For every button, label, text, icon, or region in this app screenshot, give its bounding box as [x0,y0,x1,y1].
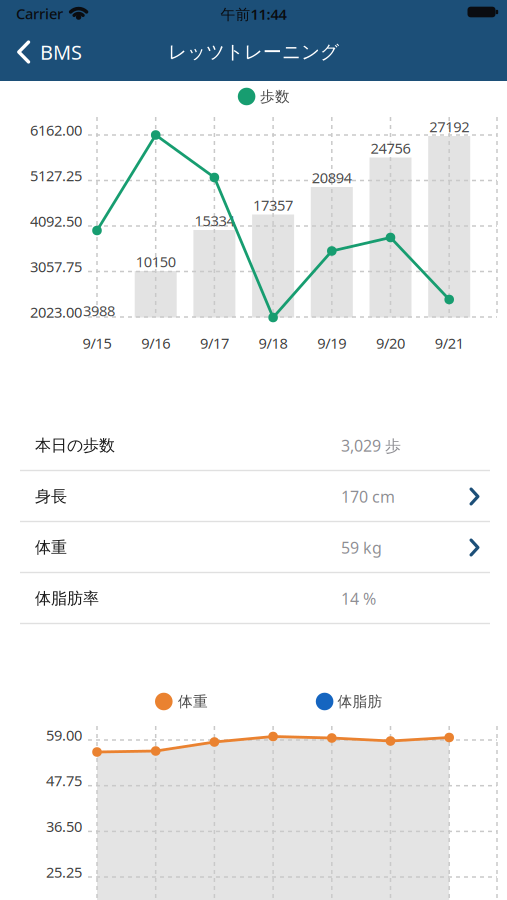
staticText: レッツトレーニング [168,40,339,63]
staticText: 36.50 [46,817,82,836]
staticText: 9/17 [200,333,229,353]
staticText: 体脂肪率 [35,589,99,608]
staticText: 27192 [429,117,469,136]
staticText: 9/20 [376,333,405,353]
staticText: 9/15 [82,333,111,353]
staticText: 59 kg [341,537,382,558]
staticText: 3988 [83,301,115,320]
staticText: 6162.00 [30,120,82,140]
staticText: BMS [40,39,82,65]
staticText: 9/16 [141,333,170,353]
button[interactable]: 身長 [0,471,507,522]
staticText: 9/19 [317,333,346,353]
staticText: 午前11:44 [220,4,286,24]
staticText: 170 cm [341,486,395,507]
staticText: 25.25 [46,862,82,882]
staticText: 17357 [253,195,293,215]
staticText: 9/18 [259,333,288,353]
staticText: 10150 [136,252,176,271]
button[interactable]: Back [17,30,99,74]
staticText: 15334 [194,211,234,230]
button[interactable]: 体重 [0,522,507,573]
staticText: 体脂肪 [337,692,382,710]
staticText: 体重 [178,692,208,710]
staticText: 24756 [370,138,410,158]
staticText: 3,029 歩 [341,435,401,456]
staticText: 3057.75 [30,257,82,276]
staticText: 9/21 [435,333,464,353]
staticText: 59.00 [46,725,82,745]
staticText: 14 % [341,588,376,609]
staticText: Carrier [16,4,63,23]
staticText: 歩数 [260,87,290,105]
staticText: 2023.00 [30,302,82,322]
staticText: 47.75 [46,771,82,790]
staticText: 身長 [35,487,67,506]
staticText: 本日の歩数 [35,436,115,455]
staticText: 20894 [312,168,352,187]
staticText: 4092.50 [30,211,82,231]
staticText: 体重 [35,538,67,557]
staticText: 5127.25 [30,166,82,185]
